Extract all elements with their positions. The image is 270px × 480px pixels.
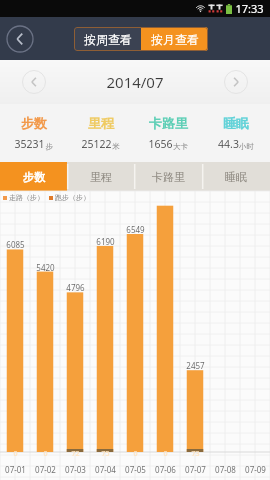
staticText: 步 [45, 142, 53, 151]
button[interactable]: 卡路里 [134, 104, 202, 162]
staticText: 5420 [36, 262, 55, 273]
staticText: 07-07 [185, 464, 206, 475]
button[interactable]: 步数 [0, 104, 67, 162]
staticText: 2457 [186, 360, 205, 371]
staticText: 走路（步） [9, 193, 44, 202]
button[interactable]: 按周查看 [74, 27, 141, 51]
staticText: 07-02 [35, 464, 56, 475]
staticText: 睡眠 [223, 115, 249, 131]
staticText: 1656 [148, 137, 173, 151]
button[interactable]: 里程 [67, 104, 134, 162]
staticText: 75 [101, 449, 110, 459]
button[interactable]: 睡眠 [202, 104, 270, 162]
staticText: 07-05 [125, 464, 146, 475]
staticText: 0 [43, 449, 48, 459]
staticText: 6085 [6, 239, 25, 250]
staticText: 按月查看 [151, 32, 199, 47]
button[interactable]: Previous month [22, 70, 46, 94]
staticText: 里程 [88, 115, 114, 131]
staticText: 07-08 [215, 464, 236, 475]
staticText: 米 [112, 142, 120, 151]
staticText: 按周查看 [84, 32, 132, 47]
staticText: 大卡 [173, 142, 188, 151]
button[interactable]: 步数 [0, 162, 67, 191]
button[interactable]: 睡眠 [202, 162, 270, 191]
staticText: 里程 [90, 170, 112, 184]
staticText: 2014/07 [106, 72, 164, 92]
staticText: 73 [191, 449, 200, 459]
button[interactable]: 按月查看 [141, 27, 208, 51]
staticText: 44.3 [218, 137, 239, 151]
button[interactable]: 里程 [67, 162, 134, 191]
staticText: 跑步（步） [55, 193, 90, 202]
staticText: 步数 [21, 115, 47, 131]
staticText: 步数 [23, 170, 45, 184]
staticText: 0 [13, 449, 18, 459]
staticText: 07-03 [65, 464, 86, 475]
staticText: 17:33 [235, 1, 264, 16]
staticText: 卡路里 [149, 115, 188, 131]
staticText: 小时 [239, 142, 254, 151]
button[interactable]: Back [6, 25, 34, 53]
staticText: 卡路里 [152, 170, 185, 184]
staticText: 25122 [81, 137, 112, 151]
staticText: 4796 [66, 282, 85, 293]
staticText: 6549 [126, 224, 145, 235]
staticText: 睡眠 [225, 170, 247, 184]
staticText: 6190 [96, 236, 115, 247]
button[interactable]: Next month [224, 70, 248, 94]
staticText: 07-01 [5, 464, 26, 475]
staticText: 0 [133, 449, 138, 459]
staticText: 0 [163, 449, 168, 459]
staticText: 35231 [14, 137, 45, 151]
staticText: 72 [71, 449, 80, 459]
staticText: 07-09 [245, 464, 266, 475]
button[interactable]: 卡路里 [134, 162, 202, 191]
staticText: 07-06 [155, 464, 176, 475]
staticText: 07-04 [95, 464, 116, 475]
